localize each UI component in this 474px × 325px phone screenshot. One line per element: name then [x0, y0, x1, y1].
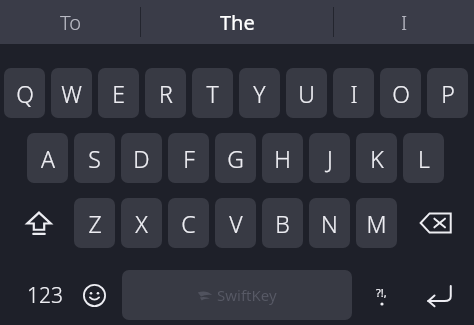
button[interactable]: Y: [239, 68, 280, 118]
button[interactable]: W: [51, 68, 92, 118]
staticText: R: [159, 78, 173, 109]
staticText: 123: [27, 281, 63, 310]
staticText: A: [41, 143, 55, 174]
staticText: SwiftKey: [217, 285, 277, 305]
button[interactable]: G: [215, 133, 256, 183]
staticText: U: [298, 78, 315, 109]
button[interactable]: O: [380, 68, 421, 118]
staticText: To: [60, 9, 81, 36]
button[interactable]: Z: [74, 198, 115, 248]
staticText: Z: [88, 208, 102, 239]
button[interactable]: X: [121, 198, 162, 248]
button[interactable]: Enter: [410, 270, 468, 320]
button[interactable]: SwiftKey: [122, 270, 352, 320]
button[interactable]: To: [0, 0, 140, 44]
button[interactable]: F: [168, 133, 209, 183]
button[interactable]: U: [286, 68, 327, 118]
staticText: B: [275, 208, 290, 239]
staticText: J: [327, 143, 333, 174]
button[interactable]: M: [356, 198, 397, 248]
button[interactable]: B: [262, 198, 303, 248]
button[interactable]: Emoji: [74, 270, 114, 320]
button[interactable]: L: [403, 133, 444, 183]
staticText: I: [350, 78, 358, 109]
staticText: ?!,: [376, 285, 387, 300]
button[interactable]: Backspace: [404, 198, 468, 248]
staticText: G: [227, 143, 244, 174]
button[interactable]: J: [309, 133, 350, 183]
button[interactable]: Shift: [8, 198, 70, 248]
staticText: H: [274, 143, 291, 174]
button[interactable]: H: [262, 133, 303, 183]
staticText: V: [229, 208, 243, 239]
button[interactable]: V: [215, 198, 256, 248]
button[interactable]: Q: [4, 68, 45, 118]
staticText: The: [220, 9, 255, 36]
staticText: T: [206, 78, 219, 109]
button[interactable]: K: [356, 133, 397, 183]
button[interactable]: I: [334, 0, 474, 44]
staticText: W: [61, 78, 82, 109]
button[interactable]: P: [427, 68, 468, 118]
staticText: I: [401, 9, 408, 36]
staticText: K: [370, 143, 384, 174]
staticText: E: [112, 78, 125, 109]
button[interactable]: R: [145, 68, 186, 118]
staticText: D: [133, 143, 150, 174]
staticText: C: [181, 208, 196, 239]
button[interactable]: C: [168, 198, 209, 248]
staticText: Y: [253, 78, 266, 109]
button[interactable]: ?!,: [358, 270, 404, 320]
staticText: N: [321, 208, 338, 239]
button[interactable]: S: [74, 133, 115, 183]
staticText: O: [392, 78, 410, 109]
staticText: P: [441, 78, 455, 109]
button[interactable]: E: [98, 68, 139, 118]
staticText: X: [135, 208, 148, 239]
button[interactable]: D: [121, 133, 162, 183]
button[interactable]: T: [192, 68, 233, 118]
staticText: M: [366, 208, 387, 239]
staticText: Q: [16, 78, 34, 109]
button[interactable]: The: [141, 0, 333, 44]
staticText: S: [88, 143, 101, 174]
button[interactable]: I: [333, 68, 374, 118]
button[interactable]: A: [27, 133, 68, 183]
staticText: F: [183, 143, 195, 174]
staticText: L: [418, 143, 430, 174]
button[interactable]: 123: [14, 270, 76, 320]
button[interactable]: N: [309, 198, 350, 248]
